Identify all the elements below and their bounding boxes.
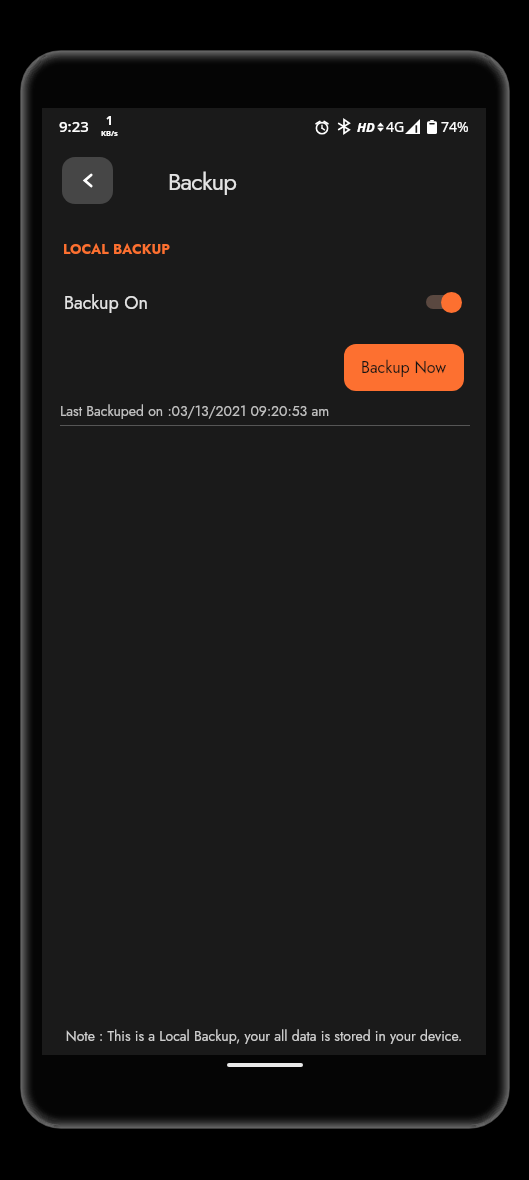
- button[interactable]: Back: [62, 157, 113, 204]
- staticText: Backup: [168, 164, 237, 199]
- staticText: KB/s: [101, 128, 118, 138]
- button[interactable]: Backup On: [42, 274, 486, 330]
- staticText: LOCAL BACKUP: [63, 239, 171, 259]
- staticText: 4G: [386, 117, 405, 136]
- button[interactable]: Backup On toggle: [420, 284, 468, 320]
- staticText: 9:23: [59, 116, 89, 136]
- staticText: 1: [106, 112, 113, 128]
- staticText: HD: [357, 118, 375, 136]
- staticText: Backup Now: [361, 356, 447, 379]
- staticText: 74%: [441, 117, 469, 136]
- staticText: Note : This is a Local Backup, your all …: [42, 1026, 486, 1046]
- button[interactable]: Backup Now: [344, 344, 464, 391]
- staticText: Backup On: [64, 290, 148, 316]
- staticText: Last Backuped on :03/13/2021 09:20:53 am: [60, 401, 330, 421]
